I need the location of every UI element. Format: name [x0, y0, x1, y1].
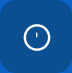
button[interactable]: Power — [0, 0, 72, 73]
